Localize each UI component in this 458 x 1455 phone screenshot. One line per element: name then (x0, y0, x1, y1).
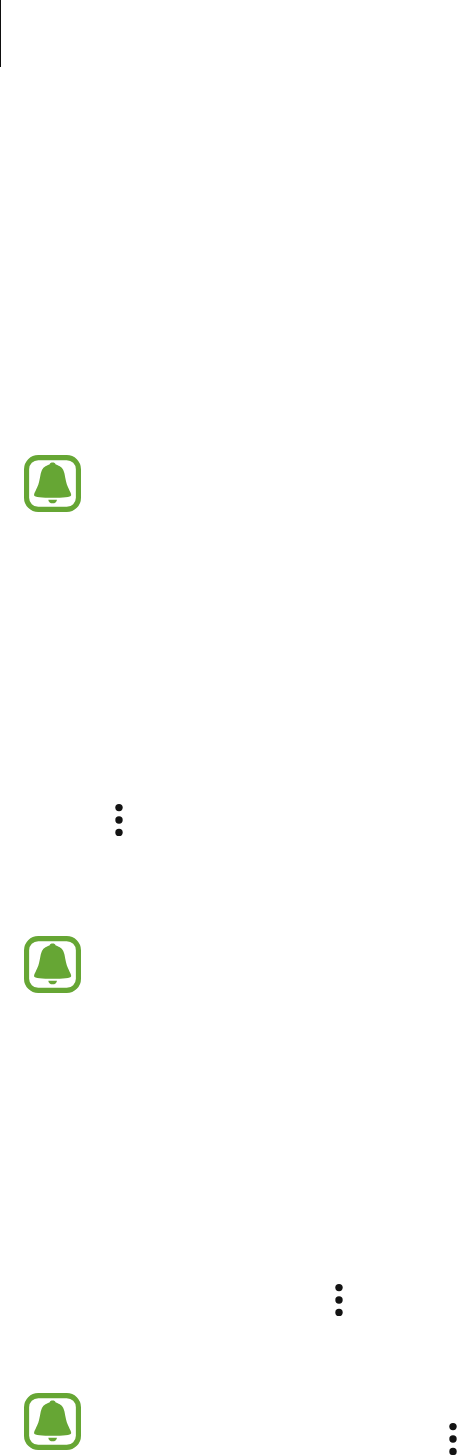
button[interactable]: Notifications (0, 936, 458, 993)
button[interactable]: Notifications (0, 455, 458, 512)
button[interactable]: More options (326, 1280, 352, 1320)
button[interactable]: Notifications (0, 1393, 458, 1450)
button[interactable]: Notifications (24, 936, 81, 993)
button[interactable]: More options (440, 1419, 458, 1455)
button[interactable]: Notifications (24, 1393, 81, 1450)
button[interactable]: More options (106, 800, 132, 840)
button[interactable]: Notifications (24, 455, 81, 512)
